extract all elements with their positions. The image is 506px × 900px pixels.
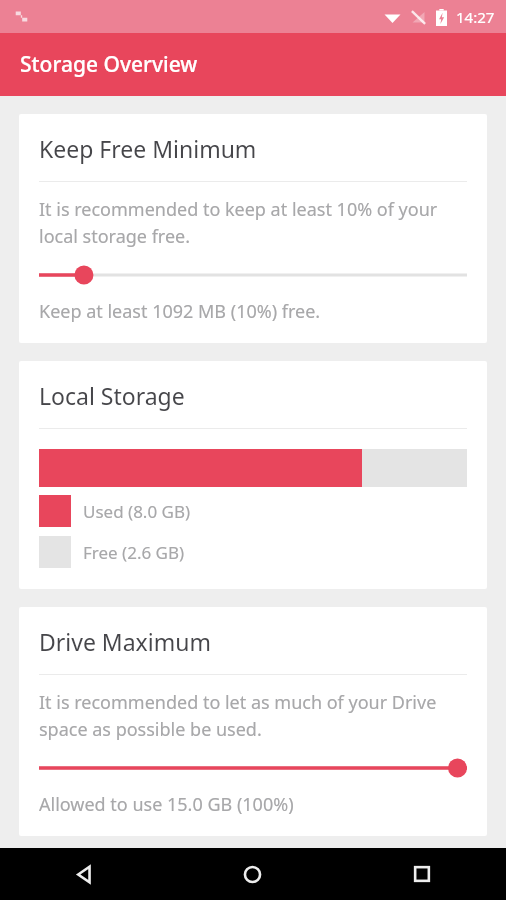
- button[interactable]: Drive Maximum: [19, 607, 487, 836]
- staticText: It is recommended to let as much of your…: [39, 690, 467, 742]
- button[interactable]: Keep Free Minimum: [19, 114, 487, 343]
- button[interactable]: [39, 755, 467, 781]
- staticText: Storage Overview: [20, 50, 198, 79]
- staticText: Local Storage: [39, 380, 185, 411]
- button[interactable]: Back: [0, 848, 168, 900]
- staticText: Keep at least 1092 MB (10%) free.: [39, 299, 321, 324]
- staticText: 14:27: [456, 7, 495, 27]
- button[interactable]: Recents: [337, 848, 506, 900]
- staticText: Used (8.0 GB): [83, 500, 191, 523]
- button[interactable]: Home: [168, 848, 337, 900]
- button[interactable]: [39, 262, 467, 288]
- button[interactable]: Storage Overview: [0, 33, 506, 96]
- staticText: Free (2.6 GB): [83, 541, 185, 564]
- staticText: Drive Maximum: [39, 626, 211, 657]
- staticText: Allowed to use 15.0 GB (100%): [39, 792, 294, 817]
- staticText: It is recommended to keep at least 10% o…: [39, 197, 467, 249]
- staticText: Keep Free Minimum: [39, 133, 257, 164]
- button[interactable]: Local Storage: [19, 361, 487, 589]
